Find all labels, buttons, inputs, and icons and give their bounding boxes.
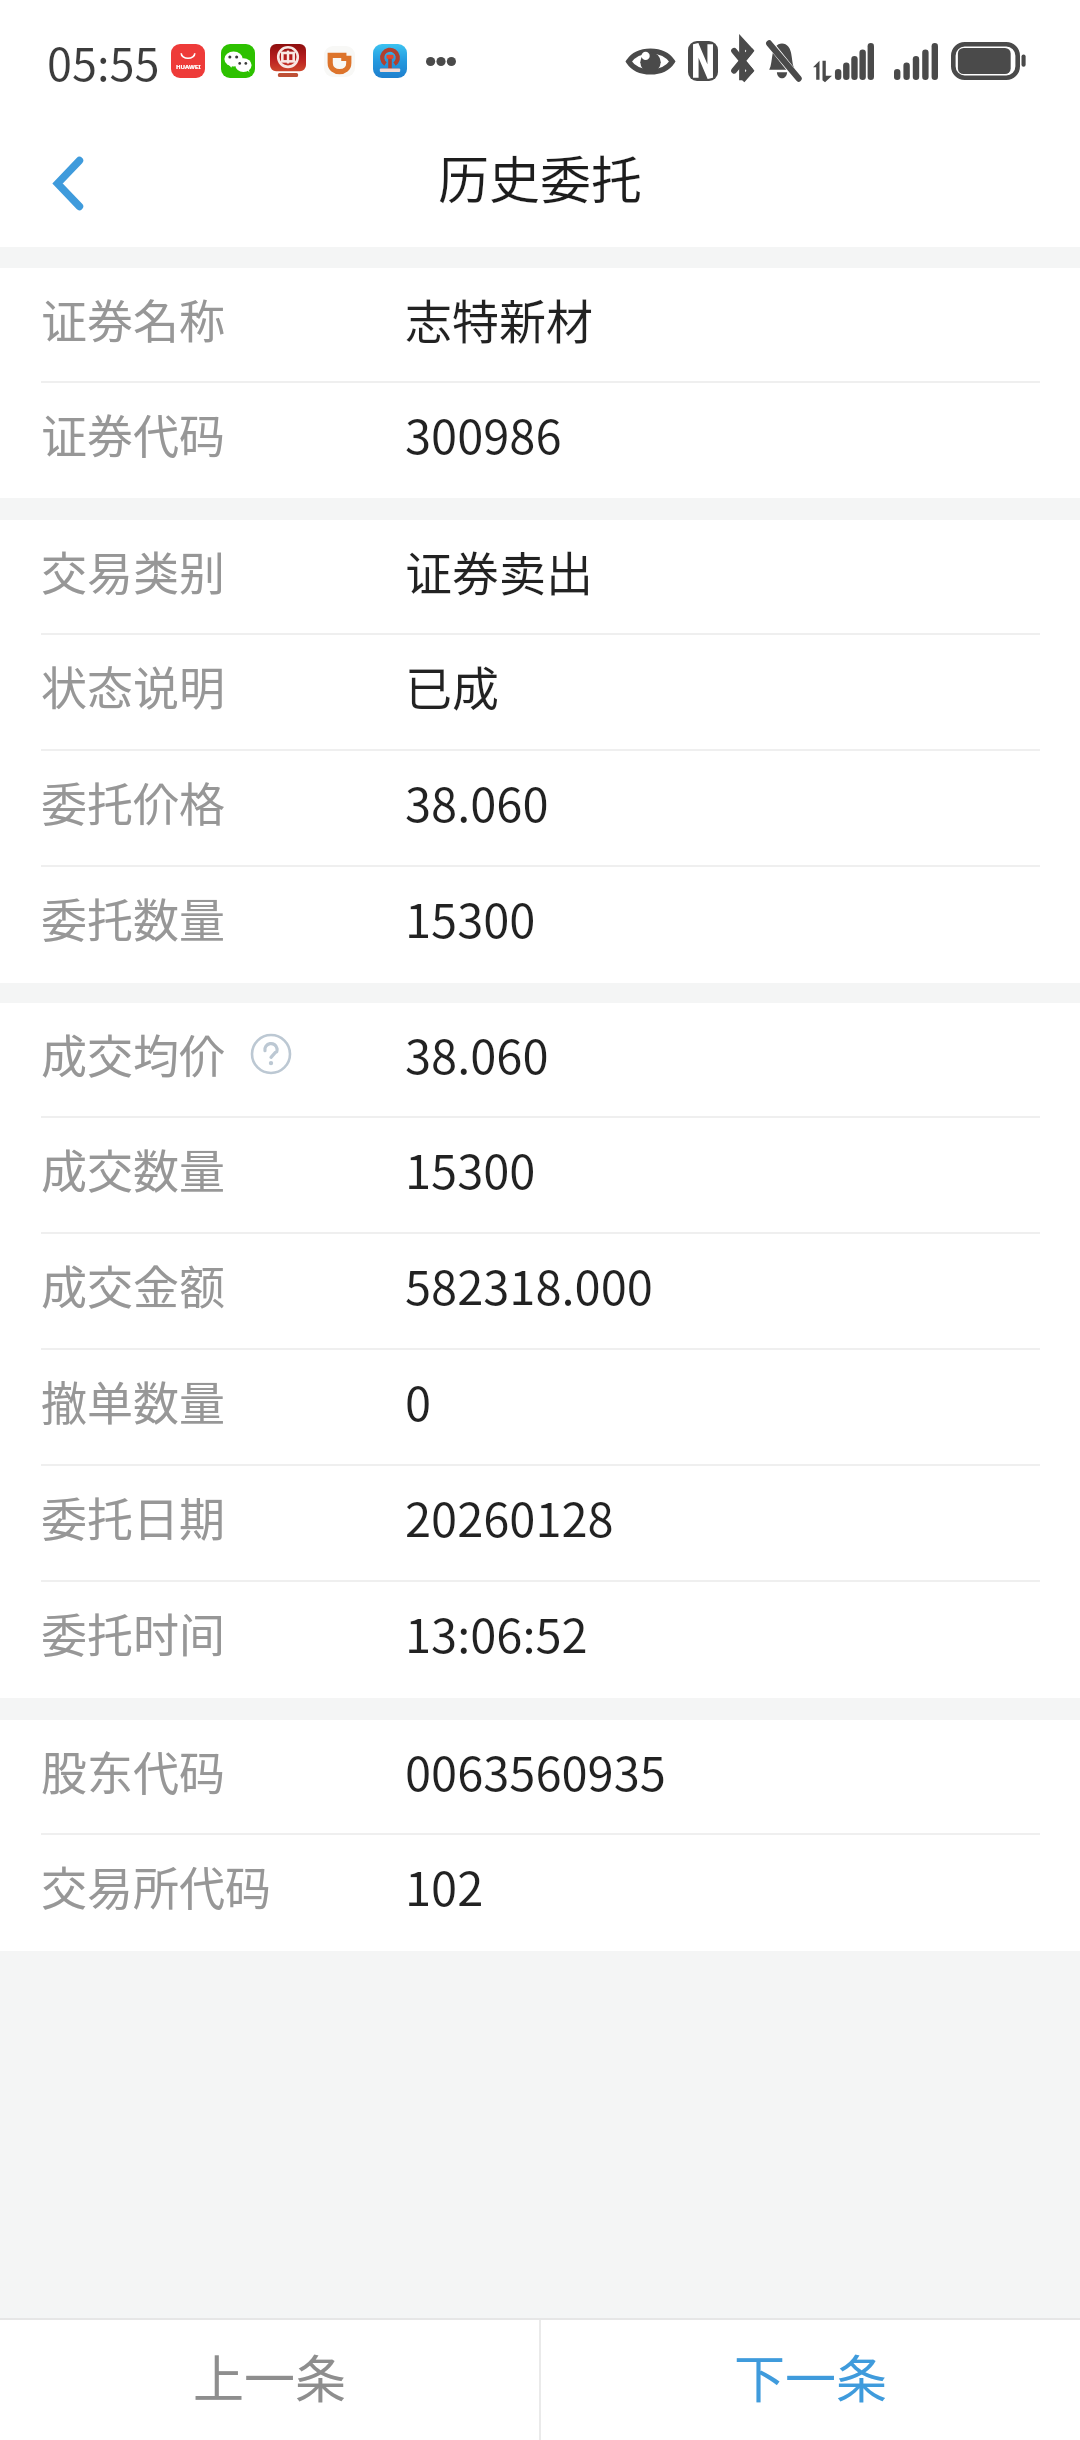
staticText: 成交金额 [41,1251,225,1318]
staticText: 582318.000 [405,1250,653,1318]
staticText: 成交数量 [41,1135,225,1202]
button[interactable]: 成交金额 [0,1234,1080,1350]
staticText: 成交均价 [41,1020,225,1087]
staticText: 委托时间 [41,1599,225,1666]
staticText: 15300 [405,883,536,951]
button[interactable]: 成交均价 [0,1003,1080,1118]
button[interactable]: 证券名称 [0,268,1080,383]
staticText: 上一条 [193,2339,347,2413]
staticText: 05:55 [47,29,160,94]
staticText: 38.060 [405,1019,549,1087]
staticText: 38.060 [405,767,549,835]
staticText: 证券代码 [41,400,225,467]
button[interactable]: 委托日期 [0,1466,1080,1582]
staticText: 历史委托 [438,140,643,214]
staticText: 证券卖出 [405,536,593,604]
staticText: 委托数量 [41,884,225,951]
button[interactable]: Help [250,1033,292,1075]
staticText: 0 [405,1366,432,1434]
staticText: 20260128 [405,1482,614,1550]
button[interactable]: 上一条 [0,2320,539,2440]
staticText: 证券名称 [41,285,225,352]
button[interactable]: 证券代码 [0,383,1080,498]
button[interactable]: 下一条 [541,2320,1080,2440]
staticText: 交易所代码 [41,1852,271,1919]
staticText: HUAWEI [176,63,201,71]
button[interactable]: 股东代码 [0,1720,1080,1835]
button[interactable]: 委托价格 [0,751,1080,867]
staticText: 志特新材 [405,284,593,352]
button[interactable]: 交易类别 [0,520,1080,635]
button[interactable]: 委托数量 [0,867,1080,983]
staticText: 委托价格 [41,768,225,835]
staticText: 102 [405,1851,484,1919]
staticText: 已成 [405,651,499,719]
staticText: 股东代码 [41,1737,225,1804]
button[interactable]: 交易所代码 [0,1835,1080,1951]
staticText: 状态说明 [41,652,225,719]
button[interactable]: 状态说明 [0,635,1080,751]
staticText: 300986 [405,399,562,467]
staticText: 下一条 [734,2339,888,2413]
staticText: 0063560935 [405,1736,666,1804]
staticText: 撤单数量 [41,1367,225,1434]
button[interactable]: 撤单数量 [0,1350,1080,1466]
staticText: 13:06:52 [405,1598,588,1666]
button[interactable]: 委托时间 [0,1582,1080,1698]
button[interactable]: Back [0,110,136,247]
staticText: 交易类别 [41,537,225,604]
staticText: 委托日期 [41,1483,225,1550]
button[interactable]: 成交数量 [0,1118,1080,1234]
staticText: 15300 [405,1134,536,1202]
